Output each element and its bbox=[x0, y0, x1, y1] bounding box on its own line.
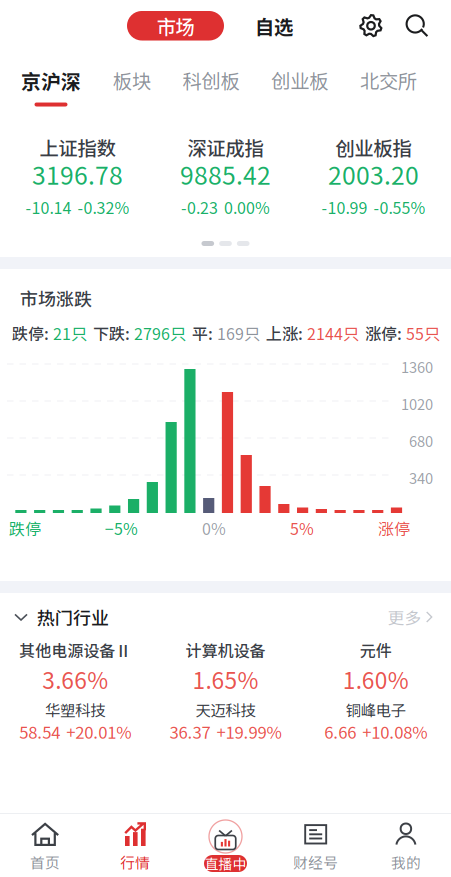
staticText: -0.23 bbox=[181, 195, 218, 219]
staticText: 跌停: bbox=[12, 321, 53, 345]
button[interactable]: 其他电源设备Ⅱ bbox=[0, 641, 150, 740]
button[interactable]: 热门行业 bbox=[0, 593, 451, 641]
staticText: 直播中 bbox=[204, 853, 246, 874]
staticText: +10.08% bbox=[362, 719, 427, 743]
button[interactable]: 计算机设备 bbox=[150, 641, 301, 740]
staticText: 2003.20 bbox=[328, 156, 419, 192]
staticText: 更多 bbox=[387, 605, 421, 629]
staticText: 我的 bbox=[391, 851, 421, 873]
button[interactable]: 设置 bbox=[358, 13, 384, 39]
staticText: 首页 bbox=[30, 851, 60, 873]
staticText: 自选 bbox=[255, 12, 293, 40]
staticText: -0.55% bbox=[373, 195, 425, 219]
staticText: 板块 bbox=[113, 66, 151, 94]
staticText: 北交所 bbox=[360, 66, 417, 94]
staticText: 计算机设备 bbox=[185, 638, 265, 662]
button[interactable]: 板块 bbox=[113, 67, 151, 107]
button[interactable]: 市场 bbox=[127, 11, 224, 40]
staticText: 1.65% bbox=[192, 663, 258, 695]
staticText: 铜峰电子 bbox=[346, 698, 406, 721]
staticText: 3.66% bbox=[42, 663, 108, 695]
staticText: 680 bbox=[409, 430, 433, 451]
staticText: 涨停 bbox=[378, 516, 410, 540]
button[interactable]: 我的 bbox=[361, 814, 451, 877]
button[interactable]: 直播中 bbox=[180, 814, 271, 877]
button[interactable]: 科创板 bbox=[182, 67, 239, 107]
button[interactable]: 首页 bbox=[0, 814, 90, 877]
staticText: 平: bbox=[192, 321, 217, 345]
button[interactable]: 上证指数 bbox=[3, 137, 151, 215]
staticText: 340 bbox=[409, 467, 433, 488]
staticText: 创业板 bbox=[271, 66, 328, 94]
staticText: 市场涨跌 bbox=[20, 285, 92, 311]
staticText: 9885.42 bbox=[180, 156, 271, 192]
button[interactable]: 京沪深 bbox=[21, 67, 81, 107]
staticText: 55只 bbox=[406, 321, 440, 345]
button[interactable]: 元件 bbox=[301, 641, 451, 740]
staticText: 下跌: bbox=[93, 321, 134, 345]
staticText: -10.14 bbox=[25, 195, 71, 219]
staticText: -0.32% bbox=[77, 195, 129, 219]
button[interactable]: 自选 bbox=[254, 11, 294, 40]
staticText: 创业板指 bbox=[335, 133, 411, 161]
staticText: 深证成指 bbox=[187, 133, 263, 161]
staticText: −5% bbox=[105, 516, 138, 540]
staticText: +19.99% bbox=[216, 719, 281, 743]
button[interactable]: 北交所 bbox=[360, 67, 417, 107]
staticText: 1.60% bbox=[343, 663, 409, 695]
staticText: 1020 bbox=[401, 393, 433, 414]
staticText: 0% bbox=[202, 516, 226, 540]
staticText: 京沪深 bbox=[21, 66, 81, 95]
staticText: 热门行业 bbox=[37, 604, 109, 630]
button[interactable]: 行情 bbox=[90, 814, 180, 877]
staticText: 58.54 bbox=[19, 719, 60, 743]
staticText: 0.00% bbox=[224, 195, 270, 219]
staticText: 36.37 bbox=[169, 719, 210, 743]
staticText: 2144只 bbox=[307, 321, 359, 345]
button[interactable]: 深证成指 bbox=[151, 137, 299, 215]
staticText: +20.01% bbox=[66, 719, 131, 743]
staticText: 行情 bbox=[120, 851, 150, 873]
staticText: 5% bbox=[290, 516, 314, 540]
staticText: 涨停: bbox=[365, 321, 406, 345]
staticText: 2796只 bbox=[134, 321, 186, 345]
staticText: 上证指数 bbox=[39, 133, 115, 161]
staticText: 天迈科技 bbox=[195, 698, 255, 721]
staticText: 其他电源设备Ⅱ bbox=[19, 638, 131, 662]
staticText: 21只 bbox=[53, 321, 87, 345]
button[interactable]: 创业板 bbox=[271, 67, 328, 107]
staticText: 华塑科技 bbox=[45, 698, 105, 721]
staticText: 6.66 bbox=[324, 719, 356, 743]
staticText: -10.99 bbox=[321, 195, 367, 219]
button[interactable]: 财经号 bbox=[271, 814, 361, 877]
button[interactable]: 搜索 bbox=[405, 14, 429, 38]
staticText: 169只 bbox=[217, 321, 260, 345]
staticText: 上涨: bbox=[266, 321, 307, 345]
staticText: 1360 bbox=[401, 356, 433, 377]
staticText: 3196.78 bbox=[32, 156, 123, 192]
staticText: 财经号 bbox=[293, 851, 338, 873]
staticText: 元件 bbox=[360, 638, 392, 662]
button[interactable]: 创业板指 bbox=[299, 137, 447, 215]
staticText: 科创板 bbox=[182, 66, 239, 94]
staticText: 跌停 bbox=[9, 516, 41, 540]
staticText: 市场 bbox=[156, 12, 194, 40]
